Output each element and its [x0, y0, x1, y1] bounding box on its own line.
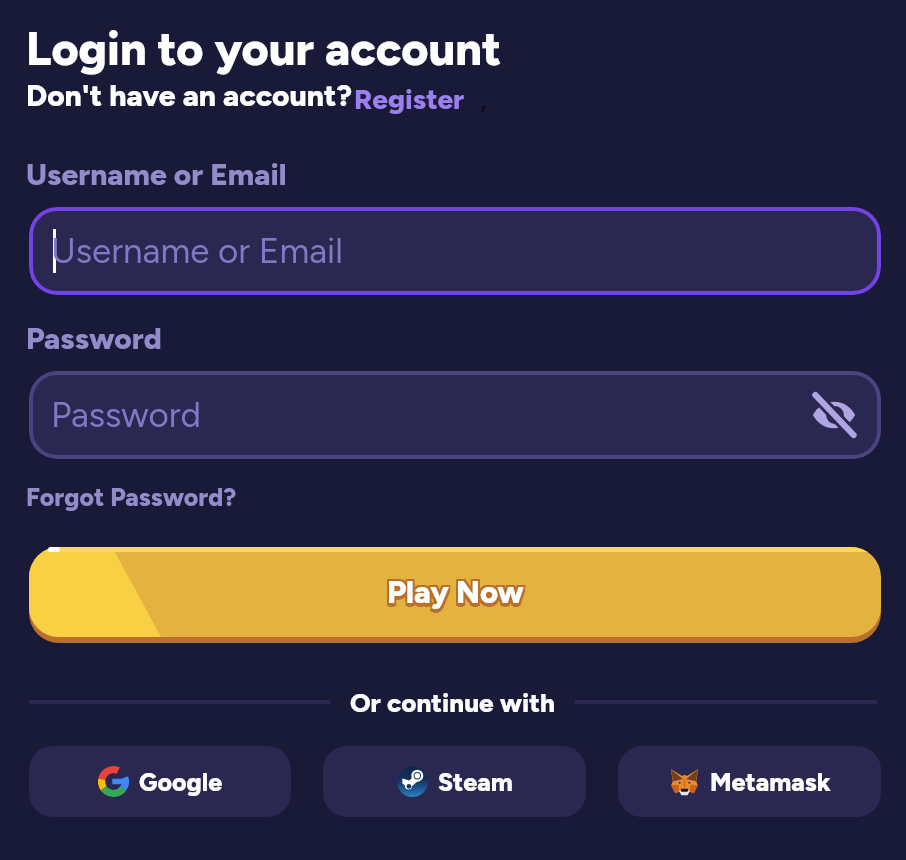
button[interactable]: Metamask	[618, 746, 881, 817]
staticText: Play Now	[385, 572, 522, 609]
staticText: Metamask	[710, 767, 831, 797]
staticText: Username or Email	[26, 156, 287, 192]
staticText: Password	[51, 394, 202, 436]
staticText: Play Now	[385, 574, 522, 611]
staticText: ,	[480, 82, 488, 116]
button[interactable]: Register	[354, 82, 465, 116]
staticText: Or continue with	[350, 687, 555, 718]
button[interactable]: Show password	[809, 390, 859, 440]
button[interactable]: Play Now	[29, 547, 881, 644]
staticText: Google	[139, 767, 223, 797]
staticText: Play Now	[387, 578, 524, 615]
staticText: Login to your account	[26, 21, 502, 77]
staticText: Don't have an account?	[26, 77, 352, 113]
button[interactable]: Steam	[323, 746, 586, 817]
button[interactable]: Username or Email	[29, 207, 881, 295]
staticText: Play Now	[387, 572, 524, 609]
staticText: Password	[26, 320, 162, 356]
button[interactable]: Google	[29, 746, 291, 817]
staticText: Play Now	[389, 572, 526, 609]
staticText: Username or Email	[51, 230, 343, 272]
staticText: Steam	[438, 767, 513, 797]
button[interactable]: Password	[29, 371, 881, 459]
button[interactable]: Forgot Password?	[26, 482, 237, 512]
staticText: Play Now	[389, 577, 526, 614]
staticText: Play Now	[385, 577, 522, 614]
staticText: Play Now	[387, 574, 524, 611]
staticText: Play Now	[387, 577, 524, 614]
staticText: Play Now	[389, 574, 526, 611]
